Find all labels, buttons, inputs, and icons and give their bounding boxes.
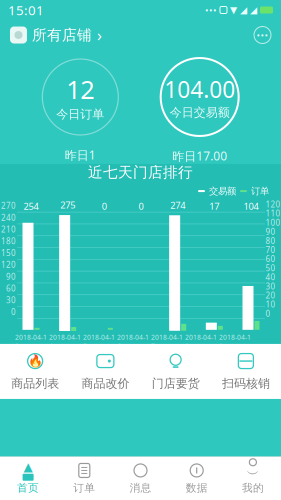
staticText: 110 [265, 208, 280, 219]
staticText: 210 [1, 224, 16, 235]
staticText: 2018-04-18 [185, 333, 217, 350]
button[interactable]: 数据 [169, 456, 225, 500]
staticText: 2018-04-19 [219, 333, 251, 350]
staticText: 270 [1, 200, 16, 211]
staticText: 40 [265, 272, 275, 282]
staticText: 商品列表 [11, 376, 59, 391]
button[interactable]: 🔥 [0, 342, 70, 401]
button[interactable]: 门店要货 [140, 342, 211, 401]
staticText: 商品改价 [81, 376, 129, 391]
staticText: 2018-04-14 [49, 333, 81, 350]
button[interactable]: 订单 [56, 456, 112, 500]
staticText: 12 [66, 72, 94, 106]
staticText: 我的 [242, 481, 264, 494]
staticText: 120 [1, 259, 16, 270]
staticText: 🔥 [28, 354, 43, 368]
staticText: 近七天门店排行 [88, 163, 193, 181]
staticText: 0 [102, 200, 107, 212]
staticText: › [97, 24, 102, 46]
button[interactable]: 扫码核销 [211, 342, 281, 401]
staticText: 104 [243, 200, 258, 212]
staticText: 30 [6, 295, 16, 305]
staticText: 所有店铺 [32, 26, 92, 44]
staticText: ▼ [230, 5, 237, 15]
staticText: 100 [265, 217, 280, 228]
staticText: 274 [170, 199, 185, 211]
staticText: 120 [265, 199, 280, 210]
staticText: 90 [265, 226, 275, 237]
staticText: 254 [23, 200, 38, 212]
staticText: 门店要货 [152, 376, 200, 391]
staticText: 275 [60, 199, 75, 211]
staticText: 2018-04-15 [83, 333, 115, 350]
staticText: 今日交易额 [170, 105, 230, 120]
button[interactable]: ︶ [225, 456, 281, 500]
staticText: 扫码核销 [222, 376, 270, 391]
staticText: 0 [11, 307, 16, 317]
button[interactable]: 消息 [112, 456, 169, 500]
staticText: 240 [1, 212, 16, 223]
staticText: 50 [265, 263, 275, 273]
button[interactable]: 商品改价 [70, 342, 140, 401]
staticText: 30 [265, 281, 275, 292]
staticText: 80 [265, 235, 275, 246]
staticText: ••• [205, 4, 217, 16]
staticText: 60 [6, 283, 16, 294]
button[interactable]: 消息 [254, 26, 271, 43]
staticText: ◢ [250, 5, 257, 15]
staticText: 订单 [251, 185, 269, 197]
staticText: 10 [265, 299, 275, 310]
staticText: 90 [6, 271, 16, 282]
staticText: 订单 [73, 481, 95, 494]
staticText: 今日订单 [56, 107, 104, 122]
button[interactable]: ▲ [0, 456, 56, 500]
staticText: 104.00 [164, 74, 235, 104]
staticText: 150 [1, 248, 16, 258]
staticText: 昨日17.00 [172, 148, 227, 164]
staticText: 17 [209, 200, 219, 212]
staticText: ▲ [24, 460, 33, 474]
staticText: 2018-04-17 [151, 333, 183, 350]
staticText: 0 [138, 200, 143, 212]
staticText: 180 [1, 236, 16, 246]
staticText: 交易额 [209, 185, 236, 197]
staticText: 70 [265, 245, 275, 255]
staticText: 昨日1 [65, 147, 96, 163]
staticText: 0 [265, 308, 270, 319]
staticText: 15:01 [8, 1, 44, 19]
staticText: 2018-04-16 [117, 333, 149, 350]
staticText: 60 [265, 254, 275, 264]
staticText: 首页 [17, 481, 39, 494]
staticText: 数据 [186, 481, 208, 494]
staticText: ︶ [246, 466, 259, 482]
staticText: ◢ [240, 5, 247, 15]
staticText: 消息 [129, 481, 151, 494]
staticText: ••• [256, 29, 268, 41]
staticText: 20 [265, 290, 275, 301]
staticText: 2018-04-13 [15, 333, 47, 350]
button[interactable]: 所有店铺 [10, 24, 102, 46]
